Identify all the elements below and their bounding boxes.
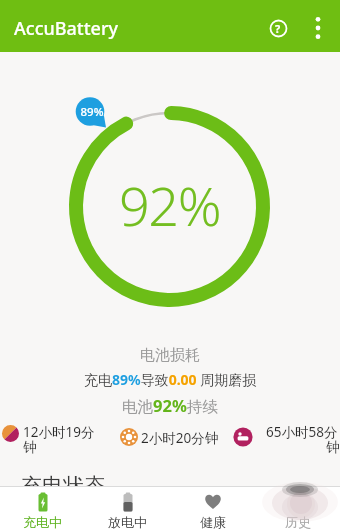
staticText: 电池92%持续 bbox=[122, 394, 218, 416]
staticText: 放电中 bbox=[108, 514, 147, 530]
staticText: 92% bbox=[119, 168, 221, 242]
staticText: ? bbox=[275, 21, 281, 36]
staticText: 钟 bbox=[326, 439, 340, 456]
staticText: 充电状态 bbox=[21, 473, 105, 499]
staticText: AccuBattery bbox=[14, 16, 119, 41]
button[interactable]: ? bbox=[262, 12, 294, 44]
staticText: 钟 bbox=[23, 439, 37, 456]
staticText: 健康 bbox=[200, 514, 226, 530]
button[interactable]: 历史 bbox=[255, 487, 340, 532]
staticText: 2小时20分钟 bbox=[141, 429, 219, 447]
staticText: 89% bbox=[78, 104, 106, 120]
staticText: 65小时58分 bbox=[266, 423, 338, 441]
staticText: 充电中 bbox=[23, 514, 62, 530]
staticText: 充电89%导致0.00 周期磨损 bbox=[84, 370, 257, 389]
button[interactable]: 放电中 bbox=[85, 487, 170, 532]
button[interactable]: 健康 bbox=[170, 487, 255, 532]
button[interactable]: 充电中 bbox=[0, 487, 85, 532]
staticText: 电池损耗 bbox=[140, 346, 200, 365]
staticText: 历史 bbox=[285, 514, 311, 530]
staticText: 12小时19分 bbox=[23, 423, 95, 441]
button[interactable] bbox=[304, 14, 332, 42]
